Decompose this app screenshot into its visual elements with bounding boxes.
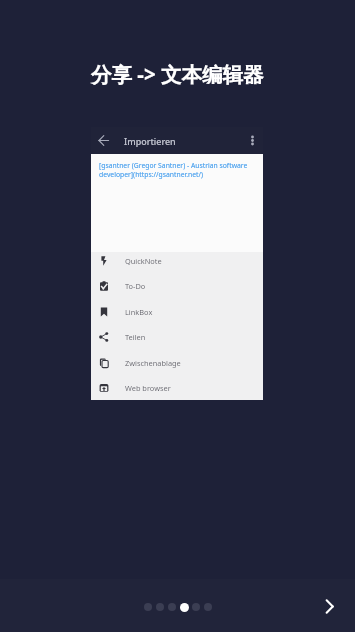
button[interactable]: Next — [311, 588, 347, 624]
staticText: [gsantner (Gregor Santner) - Austrian so… — [99, 161, 248, 170]
button[interactable]: Web browser — [91, 375, 263, 400]
button[interactable]: To-Do — [91, 273, 263, 298]
staticText: Zwischenablage — [125, 358, 181, 368]
button[interactable]: QuickNote — [91, 248, 263, 273]
button[interactable]: Zwischenablage — [91, 350, 263, 375]
button[interactable]: Back — [96, 133, 111, 148]
staticText: Teilen — [125, 332, 146, 342]
staticText: Importieren — [124, 135, 176, 147]
button[interactable]: More options — [246, 134, 259, 147]
staticText: To-Do — [125, 281, 146, 291]
button[interactable]: Teilen — [91, 324, 263, 349]
staticText: LinkBox — [125, 307, 153, 317]
staticText: 分享 -> 文本编辑器 — [91, 60, 264, 88]
button[interactable]: LinkBox — [91, 299, 263, 324]
staticText: developer](https://gsantner.net/) — [99, 170, 204, 179]
staticText: Web browser — [125, 383, 171, 393]
staticText: QuickNote — [125, 256, 162, 266]
